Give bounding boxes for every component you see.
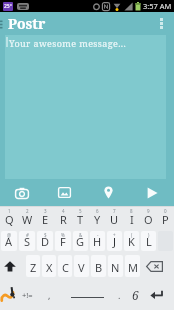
staticText: 6	[132, 287, 139, 303]
button[interactable]	[141, 253, 174, 279]
staticText: 0	[164, 208, 167, 214]
staticText: 9	[147, 208, 150, 214]
button[interactable]: 5	[72, 207, 89, 229]
button[interactable]: $	[37, 231, 53, 251]
staticText: W	[22, 212, 33, 227]
button[interactable]: V	[74, 255, 89, 277]
staticText: K	[128, 234, 135, 249]
staticText: A	[5, 234, 13, 249]
staticText: H	[93, 234, 102, 249]
button[interactable]: Your awesome message...	[5, 35, 166, 179]
staticText: E	[42, 212, 49, 227]
button[interactable]: @	[1, 231, 17, 251]
staticText: 2	[26, 208, 29, 214]
button[interactable]: +!=	[18, 279, 37, 310]
staticText: Y	[94, 212, 101, 227]
button[interactable]: 3	[36, 207, 54, 229]
button[interactable]	[0, 279, 18, 310]
button[interactable]: (	[124, 231, 139, 251]
staticText: 4	[62, 208, 65, 214]
staticText: B	[95, 260, 103, 275]
staticText: M	[128, 260, 138, 275]
button[interactable]: 8	[123, 207, 140, 229]
staticText: .	[118, 289, 121, 301]
button[interactable]: 0	[157, 207, 174, 229]
button[interactable]: )	[141, 231, 156, 251]
staticText: D	[41, 234, 50, 249]
staticText: 1	[8, 208, 11, 214]
staticText: X	[46, 260, 53, 275]
button[interactable]	[62, 279, 112, 310]
button[interactable]: ,	[37, 279, 62, 310]
staticText: 25°	[4, 3, 12, 10]
staticText: F	[60, 234, 66, 249]
staticText: V	[78, 260, 85, 275]
staticText: +!=	[22, 290, 33, 300]
staticText: U	[110, 212, 119, 227]
button[interactable]	[160, 18, 163, 29]
staticText: 6	[96, 208, 99, 214]
staticText: T	[77, 212, 84, 227]
button[interactable]: #	[19, 231, 35, 251]
button[interactable]: 6	[89, 207, 106, 229]
staticText: +	[113, 232, 116, 238]
button[interactable]: Z	[26, 255, 40, 277]
button[interactable]	[0, 179, 43, 206]
staticText: O	[144, 212, 153, 227]
staticText: N	[111, 260, 120, 275]
staticText: -	[97, 232, 99, 238]
staticText: #	[26, 232, 29, 238]
button[interactable]	[43, 179, 86, 206]
staticText: J	[113, 234, 117, 249]
button[interactable]	[86, 179, 130, 206]
button[interactable]: -	[90, 231, 105, 251]
staticText: G	[76, 234, 85, 249]
staticText: Postr	[8, 14, 46, 33]
staticText: I	[130, 212, 134, 227]
button[interactable]: .	[112, 279, 126, 310]
button[interactable]: %	[55, 231, 71, 251]
button[interactable]: N	[108, 255, 123, 277]
button[interactable]	[0, 253, 25, 279]
staticText: 3:57 AM	[143, 1, 172, 11]
staticText: S	[24, 234, 31, 249]
button[interactable]: +	[107, 231, 122, 251]
staticText: P	[162, 212, 169, 227]
button[interactable]: 2	[18, 207, 36, 229]
button[interactable]: 9	[140, 207, 157, 229]
staticText: R	[60, 212, 67, 227]
staticText: @	[7, 232, 12, 238]
button[interactable]: X	[42, 255, 56, 277]
staticText: 8	[130, 208, 133, 214]
staticText: Q	[5, 212, 14, 227]
button[interactable]: 6	[126, 279, 145, 310]
staticText: &	[79, 232, 83, 238]
staticText: ,	[48, 289, 51, 301]
button[interactable]: C	[58, 255, 72, 277]
button[interactable]: 1	[0, 207, 18, 229]
staticText: %	[61, 232, 65, 238]
staticText: 7	[113, 208, 116, 214]
staticText: C	[62, 260, 69, 275]
button[interactable]: 4	[54, 207, 72, 229]
button[interactable]: B	[91, 255, 106, 277]
staticText: 3	[44, 208, 47, 214]
staticText: L	[146, 234, 152, 249]
staticText: $	[44, 232, 47, 238]
staticText: Z	[30, 260, 37, 275]
button[interactable]: M	[125, 255, 140, 277]
button[interactable]	[130, 179, 174, 206]
button[interactable]: &	[73, 231, 88, 251]
staticText: )	[148, 232, 150, 238]
button[interactable]	[145, 279, 174, 310]
staticText: (	[131, 232, 133, 238]
staticText: Your awesome message...	[9, 37, 127, 49]
button[interactable]: 7	[106, 207, 123, 229]
staticText: 5	[79, 208, 82, 214]
